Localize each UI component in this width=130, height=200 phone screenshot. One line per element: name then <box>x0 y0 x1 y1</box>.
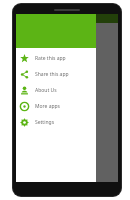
staticText: More apps <box>35 103 60 110</box>
other: More apps <box>20 102 29 111</box>
other: About Us <box>20 86 29 95</box>
button[interactable]: Settings <box>16 114 96 130</box>
staticText: Settings <box>35 119 55 126</box>
staticText: Share this app <box>35 71 69 78</box>
staticText: About Us <box>35 87 57 94</box>
other: Share this app <box>20 70 29 79</box>
other: Settings <box>20 118 29 127</box>
other: Rate this app <box>20 54 29 63</box>
button[interactable]: Rate this app <box>16 50 96 66</box>
staticText: Rate this app <box>35 55 66 62</box>
button[interactable]: About Us <box>16 82 96 98</box>
button[interactable]: Share this app <box>16 66 96 82</box>
button[interactable]: More apps <box>16 98 96 114</box>
